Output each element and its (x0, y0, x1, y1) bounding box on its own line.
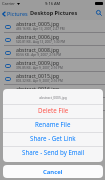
staticText: abstract_0006.jpg (16, 33, 60, 40)
button[interactable]: Delete File (3, 105, 103, 118)
button[interactable]: Search (93, 7, 105, 19)
staticText: Delete File (38, 106, 69, 114)
staticText: abstract_0016.jpg (16, 85, 60, 92)
button[interactable]: abstract_0009.jpg (0, 59, 105, 72)
staticText: Share - Get Link (30, 134, 76, 142)
button[interactable]: Cancel (3, 165, 103, 178)
button[interactable]: abstract_0016.jpg (0, 85, 105, 98)
button[interactable]: Rename File (3, 119, 103, 132)
staticText: abstract_0009.jpg (16, 59, 60, 66)
staticText: 520.81 KB - Aug 13, 2007, 1:30 PM (16, 40, 66, 44)
staticText: 80.56 KB - Apr 9, 2007, 2:16 PM (16, 53, 61, 57)
staticText: abstract_0005.jpg (39, 95, 67, 99)
button[interactable]: Pictures (0, 10, 30, 17)
staticText: Cancel (43, 168, 63, 176)
staticText: Pictures (7, 10, 28, 17)
staticText: 512.00 KB - Apr 9, 2007, 2:16 PM (16, 105, 63, 109)
staticText: Share - Send by Email (22, 148, 85, 156)
staticText: abstract_0008.jpg (16, 46, 60, 53)
staticText: 803.32 KB - Apr 9, 2007, 2:16 PM (16, 79, 63, 83)
button[interactable]: Share - Send by Email (3, 147, 103, 160)
staticText: Rename File (35, 120, 71, 128)
button[interactable]: abstract_0017.jpg (0, 98, 105, 111)
staticText: Desktop Pictures (30, 9, 78, 17)
staticText: abstract_0017.jpg (16, 98, 60, 105)
staticText: 395.85 KB - Apr 9, 2007, 2:16 PM (16, 66, 63, 70)
staticText: abstract_0015.jpg (16, 72, 60, 79)
staticText: abstract_0005.jpg (16, 20, 60, 27)
staticText: 9:16 AM (45, 1, 61, 6)
button[interactable]: abstract_0008.jpg (0, 46, 105, 59)
staticText: Carrier (2, 1, 16, 6)
button[interactable]: Share - Get Link (3, 133, 103, 146)
button[interactable]: abstract_0015.jpg (0, 72, 105, 85)
staticText: 469.16 KB - Apr 13, 2007, 2:27 PM (16, 27, 65, 31)
button[interactable]: abstract_0005.jpg (0, 20, 105, 33)
button[interactable]: abstract_0006.jpg (0, 33, 105, 46)
